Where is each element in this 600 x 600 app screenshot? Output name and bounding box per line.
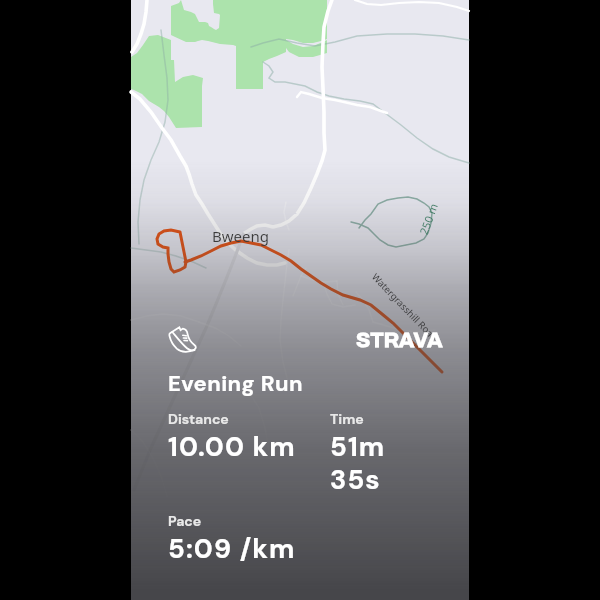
- staticText: 10.00 km: [168, 429, 296, 464]
- staticText: Evening Run: [168, 369, 303, 398]
- staticText: Pace: [168, 512, 202, 530]
- staticText: Time: [330, 410, 364, 428]
- staticText: 250 m: [416, 200, 441, 236]
- staticText: STRAVA: [356, 329, 443, 352]
- staticText: 5:09 /km: [168, 531, 296, 566]
- button[interactable]: Running activity: [167, 323, 199, 355]
- staticText: 35s: [330, 462, 381, 497]
- staticText: Bweeng: [212, 226, 269, 246]
- staticText: Distance: [168, 410, 229, 428]
- staticText: Watergrasshill Road: [369, 271, 441, 344]
- staticText: 51m: [330, 429, 386, 464]
- button[interactable]: Strava: [356, 329, 443, 352]
